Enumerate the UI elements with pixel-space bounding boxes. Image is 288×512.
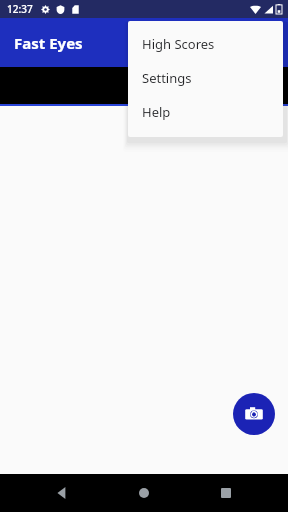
staticText: Help <box>142 103 171 121</box>
button[interactable]: Help <box>128 95 283 129</box>
staticText: High Scores <box>142 35 215 53</box>
button[interactable]: Switch camera <box>233 393 275 435</box>
button[interactable]: High Scores <box>128 27 283 61</box>
button[interactable]: Back <box>42 474 82 512</box>
staticText: Fast Eyes <box>14 33 83 53</box>
staticText: Settings <box>142 69 192 87</box>
button[interactable]: Settings <box>128 61 283 95</box>
staticText: 12:37 <box>7 2 33 16</box>
button[interactable]: Home <box>124 474 164 512</box>
button[interactable]: Recents <box>206 474 246 512</box>
